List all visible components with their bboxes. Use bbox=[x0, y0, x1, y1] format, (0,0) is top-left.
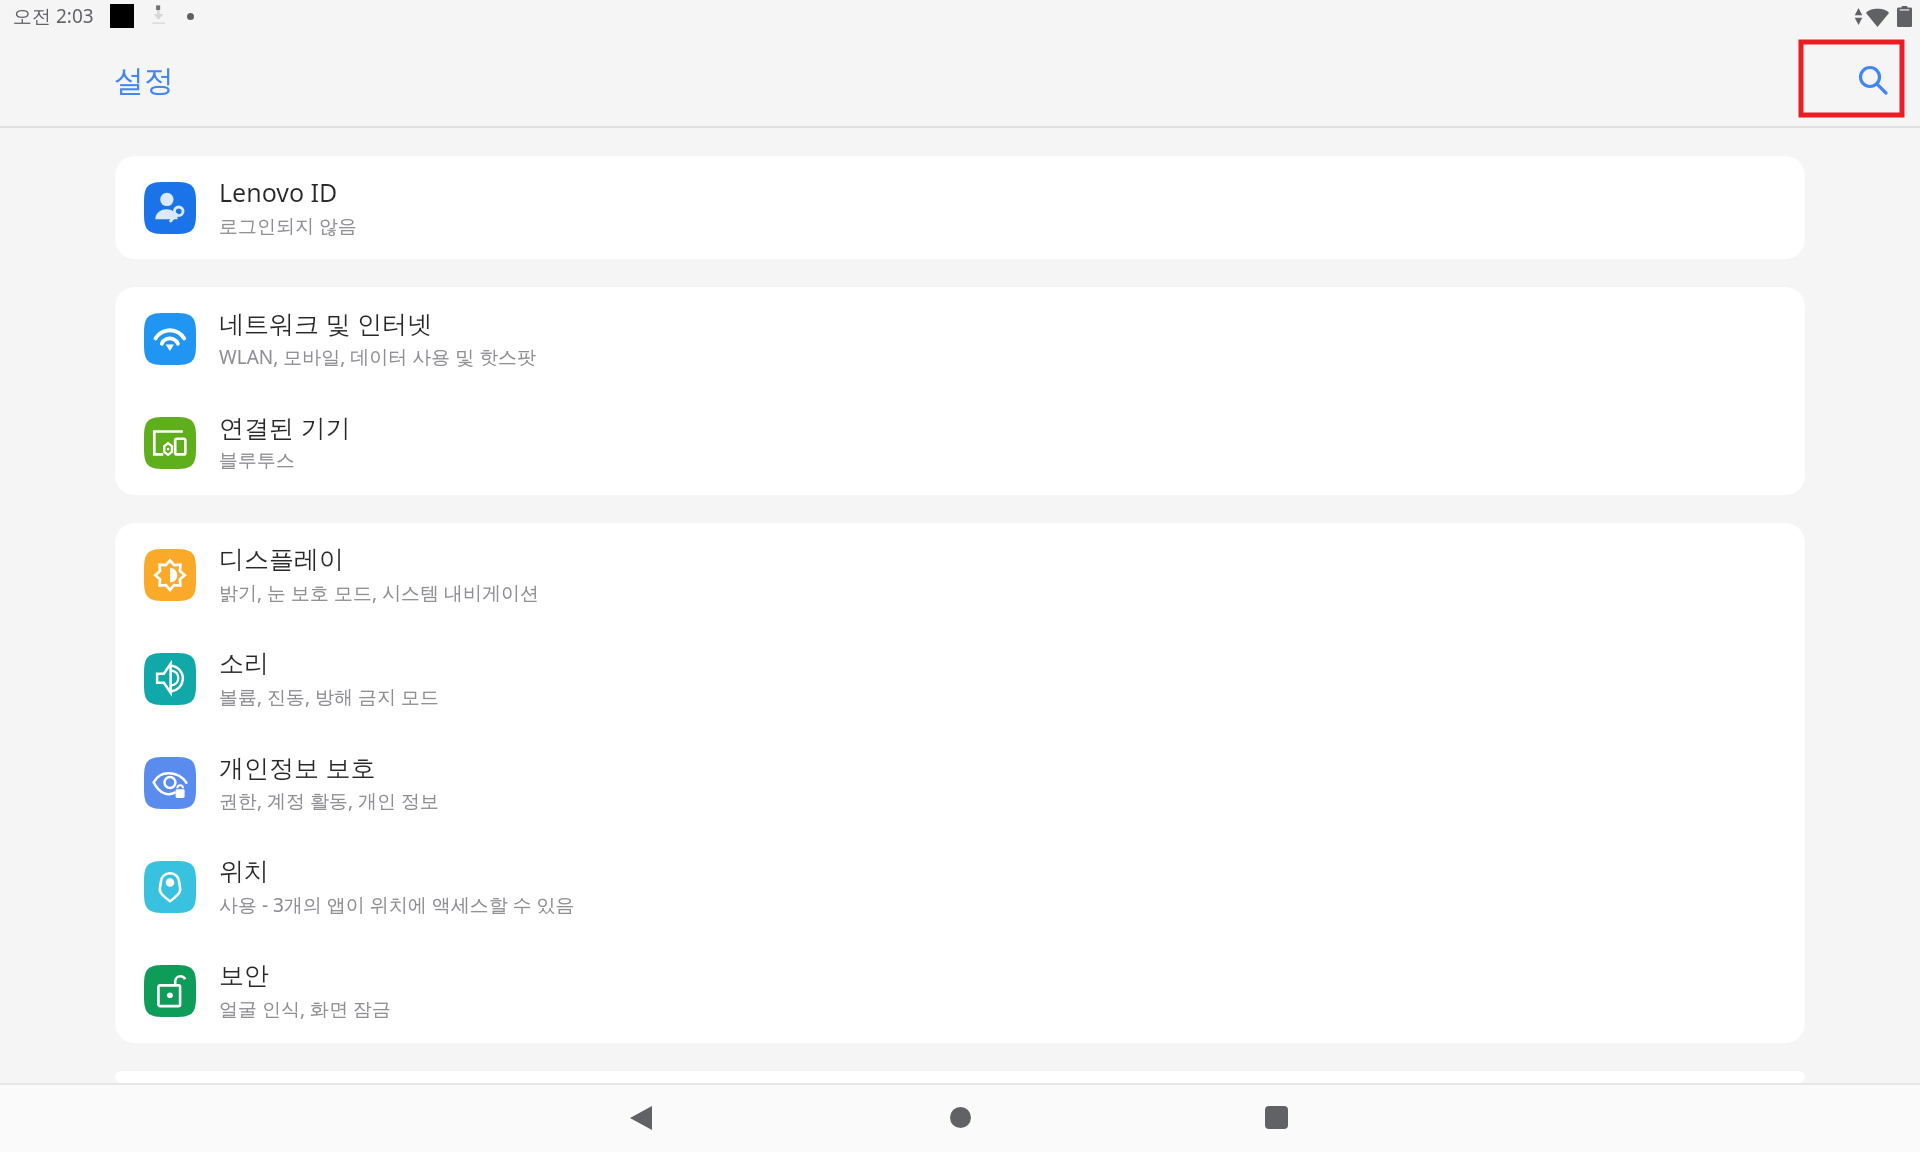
staticText: 밝기, 눈 보호 모드, 시스템 내비게이션 bbox=[219, 580, 539, 606]
staticText: 블루투스 bbox=[219, 449, 295, 473]
staticText: 얼굴 인식, 화면 잠금 bbox=[219, 996, 391, 1022]
staticText: 오전 2:03 bbox=[13, 3, 94, 29]
button[interactable]: Home bbox=[912, 1085, 1008, 1152]
staticText: 권한, 계정 활동, 개인 정보 bbox=[219, 788, 439, 814]
button[interactable]: 디스플레이 bbox=[115, 523, 1805, 627]
button[interactable]: Back bbox=[593, 1085, 689, 1152]
staticText: 네트워크 및 인터넷 bbox=[219, 306, 433, 340]
staticText: 로그인되지 않음 bbox=[219, 213, 357, 239]
staticText: 디스플레이 bbox=[219, 544, 344, 575]
staticText: 위치 bbox=[219, 856, 269, 887]
staticText: Lenovo ID bbox=[219, 175, 338, 209]
staticText: 설정 bbox=[114, 62, 174, 100]
button[interactable]: Recents bbox=[1228, 1085, 1324, 1152]
button[interactable]: 소리 bbox=[115, 627, 1805, 731]
staticText: 사용 - 3개의 앱이 위치에 액세스할 수 있음 bbox=[219, 892, 575, 918]
button[interactable]: 개인정보 보호 bbox=[115, 731, 1805, 835]
staticText: WLAN, 모바일, 데이터 사용 및 핫스팟 bbox=[219, 344, 537, 370]
staticText: 소리 bbox=[219, 648, 269, 679]
staticText: 연결된 기기 bbox=[219, 410, 351, 444]
staticText: 볼륨, 진동, 방해 금지 모드 bbox=[219, 684, 439, 710]
button[interactable]: 연결된 기기 bbox=[115, 391, 1805, 495]
button[interactable]: 보안 bbox=[115, 939, 1805, 1043]
button[interactable]: Lenovo ID bbox=[115, 156, 1805, 259]
staticText: 보안 bbox=[219, 960, 269, 991]
button[interactable]: 위치 bbox=[115, 835, 1805, 939]
button[interactable]: Search bbox=[1799, 40, 1904, 117]
button[interactable]: 네트워크 및 인터넷 bbox=[115, 287, 1805, 391]
staticText: 개인정보 보호 bbox=[219, 750, 376, 784]
